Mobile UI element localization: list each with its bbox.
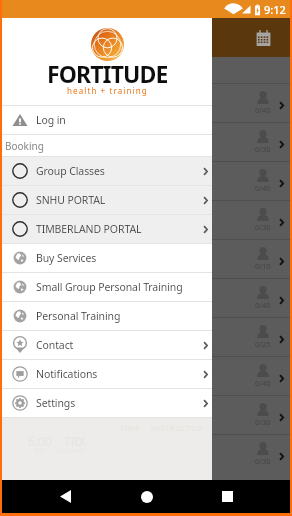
button[interactable]: Small Group Personal Training: [2, 273, 212, 301]
staticText: health + training: [67, 85, 148, 96]
button[interactable]: 0/10: [2, 240, 290, 278]
staticText: Notifications: [36, 367, 98, 381]
button[interactable]: Personal Training: [2, 302, 212, 330]
staticText: 0/40: [255, 378, 271, 388]
staticText: TIMBERLAND PORTAL: [36, 222, 142, 236]
staticText: Booking: [5, 139, 44, 153]
button[interactable]: Contact: [2, 331, 212, 359]
staticText: Settings: [36, 396, 76, 410]
staticText: 0/40: [255, 105, 271, 115]
staticText: INSTRUCTOR: [151, 423, 203, 433]
button[interactable]: Settings: [2, 389, 212, 417]
staticText: TIME: [120, 423, 141, 433]
button[interactable]: Log in: [2, 106, 212, 134]
button[interactable]: 0/40: [2, 84, 290, 122]
staticText: Group Classes: [36, 164, 105, 178]
button[interactable]: Calendar: [250, 25, 276, 51]
button[interactable]: 0/40: [2, 162, 290, 200]
button[interactable]: 0/40: [2, 357, 290, 395]
staticText: Log in: [36, 113, 66, 127]
button[interactable]: 0/30: [2, 396, 290, 434]
staticText: Personal Training: [36, 309, 121, 323]
staticText: SNHU PORTAL: [36, 193, 106, 207]
staticText: 0/40: [255, 300, 271, 310]
button[interactable]: Recent apps: [210, 480, 245, 513]
button[interactable]: Back: [48, 480, 83, 513]
button[interactable]: 0/30: [2, 435, 290, 473]
button[interactable]: Notifications: [2, 360, 212, 388]
staticText: 0/40: [255, 183, 271, 193]
staticText: TRX: [64, 433, 86, 449]
staticText: Small Group Personal Training: [36, 280, 183, 294]
button[interactable]: 0/40: [2, 279, 290, 317]
staticText: 9:12: [264, 2, 286, 17]
button[interactable]: SNHU PORTAL: [2, 186, 212, 214]
staticText: FORTITUDE: [47, 58, 168, 89]
staticText: 0/30: [255, 456, 271, 466]
staticText: 0/30: [255, 417, 271, 427]
staticText: 0/25: [255, 339, 271, 349]
button[interactable]: Group Classes: [2, 157, 212, 185]
button[interactable]: Home: [129, 480, 164, 513]
staticText: 0/10: [255, 261, 271, 271]
button[interactable]: TIMBERLAND PORTAL: [2, 215, 212, 243]
staticText: Buy Services: [36, 251, 97, 265]
staticText: 0/30: [255, 144, 271, 154]
staticText: Contact: [36, 338, 74, 352]
staticText: 0/30: [255, 222, 271, 232]
button[interactable]: 0/30: [2, 201, 290, 239]
button[interactable]: Buy Services: [2, 244, 212, 272]
button[interactable]: 0/30: [2, 123, 290, 161]
button[interactable]: 0/25: [2, 318, 290, 356]
